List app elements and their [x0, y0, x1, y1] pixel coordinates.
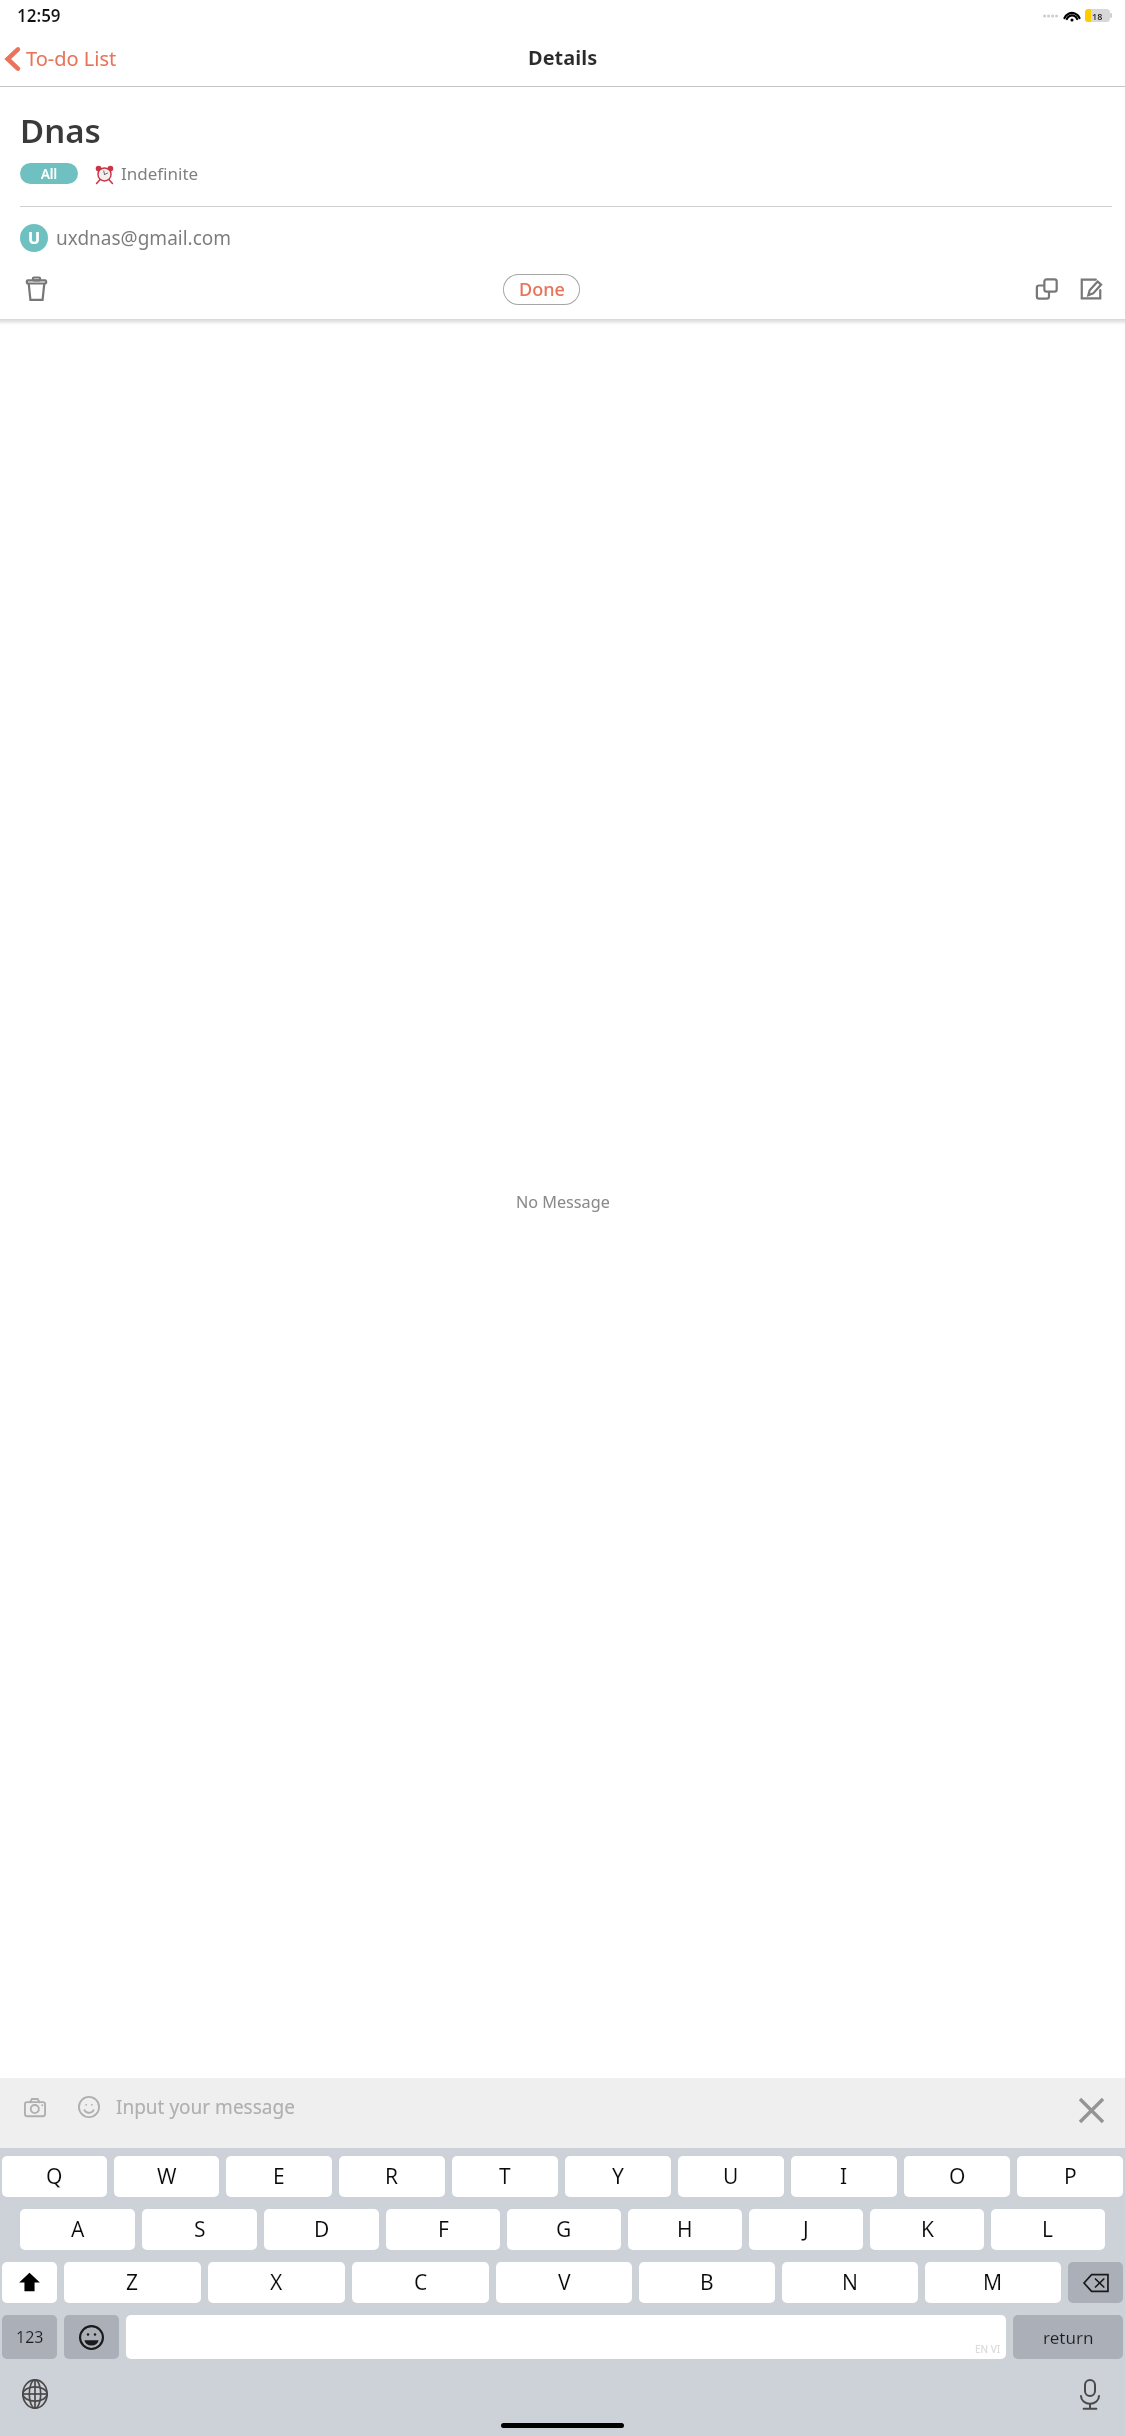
- button[interactable]: X: [208, 2262, 345, 2303]
- button[interactable]: N: [782, 2262, 918, 2303]
- button[interactable]: E: [226, 2156, 332, 2197]
- button[interactable]: Change keyboard: [14, 2373, 56, 2415]
- staticText: uxdnas@gmail.com: [56, 225, 232, 251]
- staticText: B: [700, 2268, 714, 2297]
- staticText: O: [949, 2162, 966, 2191]
- button[interactable]: K: [870, 2209, 984, 2250]
- button[interactable]: O: [904, 2156, 1010, 2197]
- staticText: M: [983, 2268, 1003, 2297]
- staticText: 12:59: [17, 4, 61, 27]
- staticText: N: [842, 2268, 858, 2297]
- staticText: Input your message: [116, 2094, 295, 2120]
- button[interactable]: 123: [2, 2315, 57, 2359]
- button[interactable]: R: [339, 2156, 445, 2197]
- staticText: L: [1042, 2215, 1054, 2244]
- button[interactable]: Dictation: [1069, 2373, 1111, 2415]
- staticText: R: [385, 2162, 399, 2191]
- button[interactable]: F: [386, 2209, 500, 2250]
- staticText: Indefinite: [121, 162, 199, 185]
- button[interactable]: D: [264, 2209, 379, 2250]
- staticText: T: [499, 2162, 511, 2191]
- button[interactable]: L: [991, 2209, 1105, 2250]
- button[interactable]: Shift: [2, 2262, 57, 2303]
- staticText: I: [840, 2162, 848, 2191]
- staticText: X: [270, 2268, 283, 2297]
- button[interactable]: return: [1013, 2315, 1123, 2359]
- staticText: S: [194, 2215, 206, 2244]
- staticText: D: [314, 2215, 330, 2244]
- button[interactable]: J: [749, 2209, 863, 2250]
- staticText: P: [1064, 2162, 1077, 2191]
- button[interactable]: Camera: [16, 2088, 54, 2126]
- button[interactable]: A: [20, 2209, 135, 2250]
- button[interactable]: B: [639, 2262, 775, 2303]
- staticText: To-do List: [26, 45, 117, 72]
- button[interactable]: To-do List: [0, 39, 125, 78]
- button[interactable]: Close: [1071, 2090, 1111, 2130]
- staticText: K: [921, 2215, 934, 2244]
- staticText: W: [157, 2162, 177, 2191]
- staticText: 18: [1092, 10, 1103, 22]
- staticText: Details: [528, 44, 598, 71]
- staticText: return: [1043, 2326, 1094, 2349]
- staticText: No Message: [516, 1191, 610, 1213]
- staticText: F: [438, 2215, 449, 2244]
- button[interactable]: Emoji keyboard: [64, 2315, 119, 2359]
- staticText: C: [414, 2268, 428, 2297]
- button[interactable]: Copy: [1025, 268, 1069, 310]
- staticText: H: [677, 2215, 693, 2244]
- staticText: V: [558, 2268, 571, 2297]
- staticText: Dnas: [20, 108, 101, 153]
- button[interactable]: I: [791, 2156, 897, 2197]
- button[interactable]: S: [142, 2209, 257, 2250]
- button[interactable]: Q: [2, 2156, 107, 2197]
- staticText: Q: [46, 2162, 63, 2191]
- button[interactable]: C: [352, 2262, 489, 2303]
- staticText: U: [723, 2162, 739, 2191]
- button[interactable]: M: [925, 2262, 1061, 2303]
- button[interactable]: Y: [565, 2156, 671, 2197]
- button[interactable]: W: [114, 2156, 219, 2197]
- button[interactable]: U: [20, 224, 232, 252]
- staticText: E: [273, 2162, 285, 2191]
- button[interactable]: Z: [64, 2262, 201, 2303]
- button[interactable]: V: [496, 2262, 632, 2303]
- staticText: 123: [16, 2326, 44, 2348]
- staticText: J: [803, 2215, 809, 2244]
- button[interactable]: H: [628, 2209, 742, 2250]
- button[interactable]: All: [20, 163, 78, 184]
- staticText: U: [28, 227, 41, 249]
- button[interactable]: P: [1017, 2156, 1123, 2197]
- button[interactable]: Delete: [14, 268, 58, 310]
- button[interactable]: G: [507, 2209, 621, 2250]
- button[interactable]: Done: [503, 274, 580, 305]
- button[interactable]: Edit: [1069, 268, 1113, 310]
- staticText: Y: [612, 2162, 624, 2191]
- staticText: EN VI: [975, 2342, 1001, 2356]
- button[interactable]: Emoji: [70, 2088, 108, 2126]
- button[interactable]: T: [452, 2156, 558, 2197]
- staticText: All: [41, 165, 58, 183]
- staticText: G: [556, 2215, 572, 2244]
- staticText: Done: [519, 277, 565, 302]
- staticText: A: [71, 2215, 85, 2244]
- staticText: Z: [126, 2268, 139, 2297]
- button[interactable]: Backspace: [1068, 2262, 1123, 2303]
- button[interactable]: U: [678, 2156, 784, 2197]
